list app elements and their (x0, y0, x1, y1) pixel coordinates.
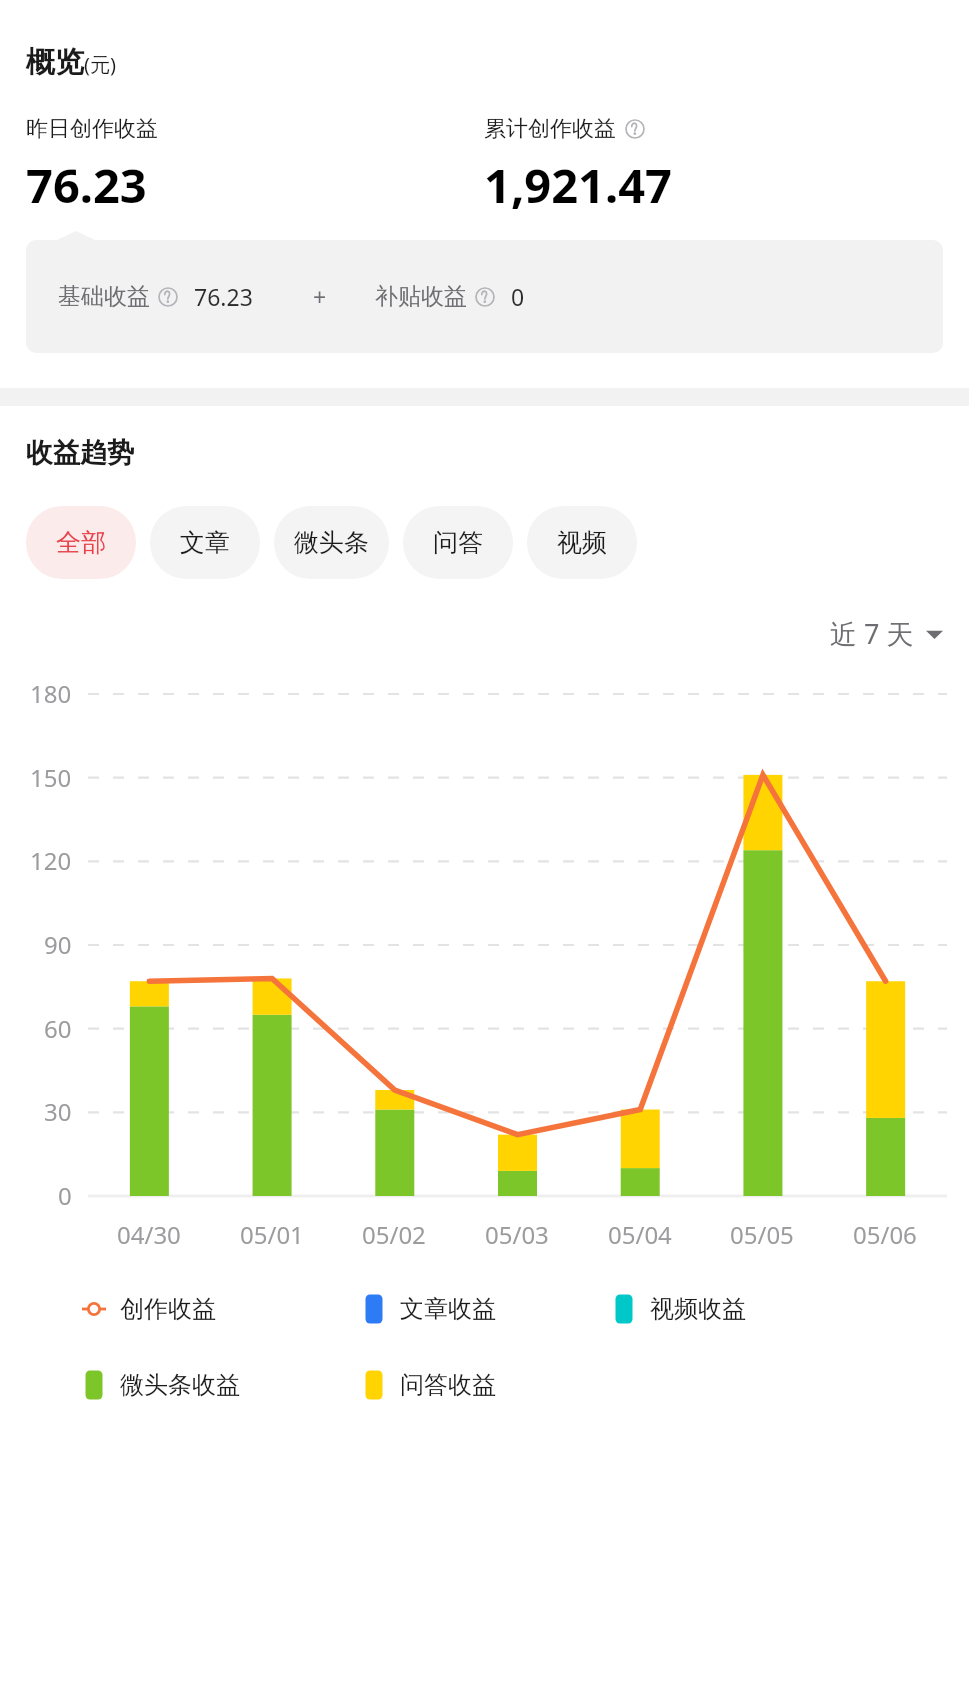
staticText: 1,921.47 (484, 153, 672, 217)
staticText: 微头条收益 (120, 1370, 240, 1400)
button[interactable]: 问答 (403, 506, 513, 579)
button[interactable]: 近 7 天 (824, 609, 949, 658)
staticText: 昨日创作收益 (26, 115, 158, 143)
staticText: 创作收益 (120, 1294, 216, 1324)
staticText: 全部 (56, 527, 106, 558)
staticText: 收益趋势 (26, 436, 134, 470)
button[interactable]: 文章 (150, 506, 260, 579)
staticText: 05/03 (485, 1218, 549, 1251)
staticText: 150 (30, 761, 72, 794)
staticText: 0 (58, 1179, 72, 1212)
staticText: 补贴收益 (375, 282, 467, 311)
staticText: 累计创作收益 (484, 115, 616, 143)
button[interactable]: 基础收益 (26, 240, 943, 353)
staticText: 05/05 (730, 1218, 794, 1251)
staticText: 基础收益 (58, 282, 150, 311)
staticText: 76.23 (194, 281, 253, 312)
staticText: 文章 (180, 527, 230, 558)
staticText: 05/02 (362, 1218, 426, 1251)
staticText: 04/30 (117, 1218, 181, 1251)
staticText: 05/06 (853, 1218, 917, 1251)
staticText: + (313, 281, 327, 312)
staticText: 文章收益 (400, 1294, 496, 1324)
button[interactable]: 累计创作收益说明 (625, 119, 645, 139)
button[interactable]: 视频收益 (610, 1294, 850, 1324)
staticText: 0 (511, 281, 525, 312)
staticText: 90 (44, 928, 72, 961)
staticText: 微头条 (294, 527, 369, 558)
staticText: 视频 (557, 527, 607, 558)
staticText: 120 (30, 844, 72, 877)
button[interactable]: 问答收益 (360, 1370, 610, 1400)
staticText: (元) (84, 51, 116, 78)
staticText: 问答收益 (400, 1370, 496, 1400)
button[interactable]: 创作收益 (80, 1294, 360, 1324)
staticText: 30 (44, 1095, 72, 1128)
button[interactable]: 微头条收益 (80, 1370, 360, 1400)
staticText: 近 7 天 (830, 615, 914, 652)
staticText: 76.23 (26, 153, 147, 217)
staticText: 05/01 (240, 1218, 304, 1251)
button[interactable]: 文章收益 (360, 1294, 610, 1324)
button[interactable]: 微头条 (274, 506, 389, 579)
staticText: 问答 (433, 527, 483, 558)
staticText: 05/04 (608, 1218, 672, 1251)
button[interactable]: 视频 (527, 506, 637, 579)
staticText: 概览 (26, 44, 84, 81)
staticText: 视频收益 (650, 1294, 746, 1324)
staticText: 180 (30, 677, 72, 710)
button[interactable]: 全部 (26, 506, 136, 579)
staticText: 60 (44, 1012, 72, 1045)
